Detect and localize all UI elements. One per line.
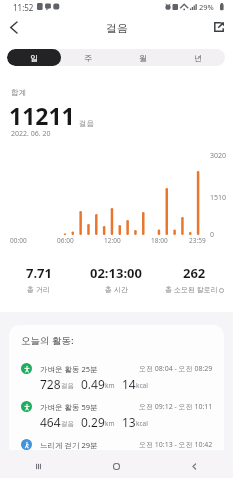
staticText: km: [105, 381, 115, 390]
staticText: 느리게 걷기 29분: [40, 440, 98, 450]
button[interactable]: Back: [155, 455, 233, 478]
staticText: 06:00: [57, 236, 74, 245]
staticText: 일: [30, 53, 38, 63]
staticText: 가벼운 활동 25분: [40, 364, 98, 374]
staticText: 728: [40, 376, 61, 392]
staticText: 걸음: [106, 21, 128, 35]
staticText: 02:13:00: [90, 264, 142, 282]
button[interactable]: 02:13:00: [77, 264, 155, 295]
staticText: 1510: [210, 193, 227, 203]
staticText: 12:00: [104, 236, 121, 245]
staticText: 262: [183, 264, 206, 282]
button[interactable]: 7.71: [0, 264, 77, 295]
button[interactable]: 가벼운 활동 25분: [21, 363, 213, 392]
staticText: 총 거리: [27, 285, 50, 295]
staticText: 가벼운 활동 59분: [40, 402, 98, 412]
staticText: 11211: [9, 100, 75, 131]
button[interactable]: 일: [7, 49, 61, 66]
staticText: 14: [122, 376, 136, 392]
button[interactable]: 월: [115, 49, 170, 66]
staticText: 총 소모된 칼로리: [165, 285, 218, 295]
staticText: 합계: [11, 88, 26, 97]
staticText: 464: [40, 414, 61, 430]
staticText: 7.71: [26, 264, 52, 282]
staticText: 총 시간: [105, 285, 128, 295]
staticText: 걸음: [61, 382, 74, 390]
staticText: 0.49: [81, 376, 105, 392]
staticText: 월: [139, 53, 147, 63]
staticText: 년: [194, 53, 202, 63]
button[interactable]: 년: [170, 49, 225, 66]
button[interactable]: Open in new window: [208, 16, 230, 38]
staticText: 오늘의 활동:: [21, 334, 74, 347]
button[interactable]: 262: [155, 264, 233, 295]
staticText: kcal: [136, 381, 148, 390]
staticText: 오전 08:04 - 오전 08:29: [139, 364, 213, 374]
staticText: 2022. 06. 20: [11, 129, 51, 139]
staticText: 11:52: [13, 2, 34, 13]
staticText: 걸음: [61, 420, 74, 428]
staticText: 00:00: [10, 236, 27, 245]
button[interactable]: 주: [61, 49, 115, 66]
staticText: 13: [122, 414, 136, 430]
staticText: 3020: [210, 151, 227, 161]
button[interactable]: Back: [2, 16, 24, 38]
staticText: 오전 10:13 - 오전 10:42: [139, 440, 213, 450]
staticText: 주: [84, 53, 92, 63]
staticText: 오전 09:12 - 오전 10:11: [139, 402, 213, 412]
button[interactable]: 느리게 걷기 29분: [21, 439, 213, 450]
staticText: 18:00: [151, 236, 168, 245]
button[interactable]: Home: [77, 455, 155, 478]
button[interactable]: Recent apps: [0, 455, 77, 478]
staticText: 0: [210, 230, 215, 240]
staticText: 29%: [199, 2, 214, 12]
staticText: kcal: [136, 419, 148, 428]
button[interactable]: 가벼운 활동 59분: [21, 401, 213, 430]
staticText: 23:59: [189, 236, 206, 245]
staticText: 0.29: [81, 414, 105, 430]
staticText: km: [105, 419, 115, 428]
staticText: 걸음: [79, 119, 94, 128]
